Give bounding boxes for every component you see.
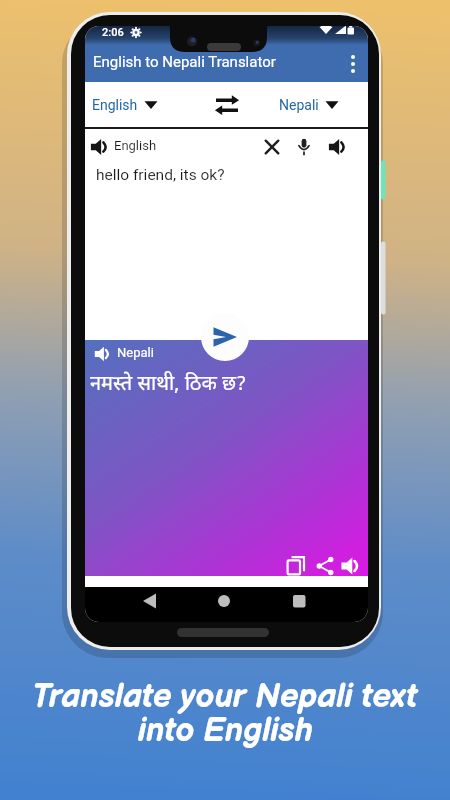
staticText: नमस्ते साथी, ठिक छ? xyxy=(90,372,247,398)
button[interactable]: English xyxy=(92,97,160,113)
button[interactable] xyxy=(210,90,244,120)
staticText: Nepali xyxy=(117,345,154,360)
button[interactable] xyxy=(288,590,310,612)
button[interactable] xyxy=(201,313,249,361)
button[interactable] xyxy=(291,134,317,160)
staticText: Translate your Nepali text xyxy=(32,677,418,717)
button[interactable] xyxy=(283,553,309,579)
staticText: hello friend, its ok? xyxy=(96,166,225,184)
staticText: English xyxy=(114,138,157,153)
button[interactable] xyxy=(338,553,364,579)
button[interactable] xyxy=(338,49,368,79)
button[interactable] xyxy=(259,134,285,160)
staticText: into English xyxy=(138,711,313,751)
staticText: 2:06 xyxy=(102,26,124,39)
staticText: English to Nepali Translator xyxy=(93,53,276,71)
button[interactable] xyxy=(139,590,161,612)
button[interactable]: Nepali xyxy=(279,97,341,113)
button[interactable] xyxy=(213,590,235,612)
button[interactable] xyxy=(323,134,351,162)
button[interactable] xyxy=(312,553,338,579)
staticText: English xyxy=(92,97,138,113)
staticText: Nepali xyxy=(279,97,319,113)
